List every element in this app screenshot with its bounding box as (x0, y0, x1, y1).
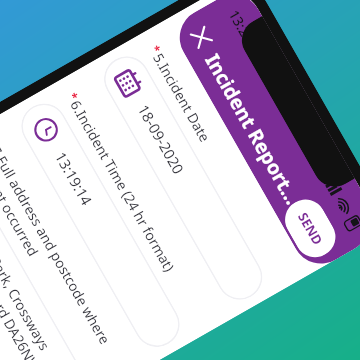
button[interactable]: 13:19:14 (13, 95, 188, 355)
staticText: 13:21 (225, 6, 259, 47)
staticText: * (148, 43, 164, 56)
button[interactable]: Close (176, 12, 227, 63)
staticText: * (65, 90, 82, 103)
staticText: Incident Report... (199, 49, 307, 209)
staticText: * (0, 135, 2, 149)
button[interactable]: SEND (278, 192, 343, 265)
staticText: 13:19:14 (50, 148, 97, 209)
button[interactable]: 18-09-2020 (96, 48, 271, 308)
staticText: 5.Incident Date (149, 50, 214, 145)
button[interactable]: Unit 5, Juniper Park, Crossways Business… (0, 150, 92, 360)
staticText: 6.Incident Time (24 hr format) (66, 97, 179, 275)
staticText: Unit 5, Juniper Park, Crossways Business… (0, 170, 74, 360)
staticText: 7.Full address and postcode where incide… (0, 142, 130, 360)
staticText: 18-09-2020 (133, 101, 188, 178)
staticText: SEND (294, 209, 327, 248)
